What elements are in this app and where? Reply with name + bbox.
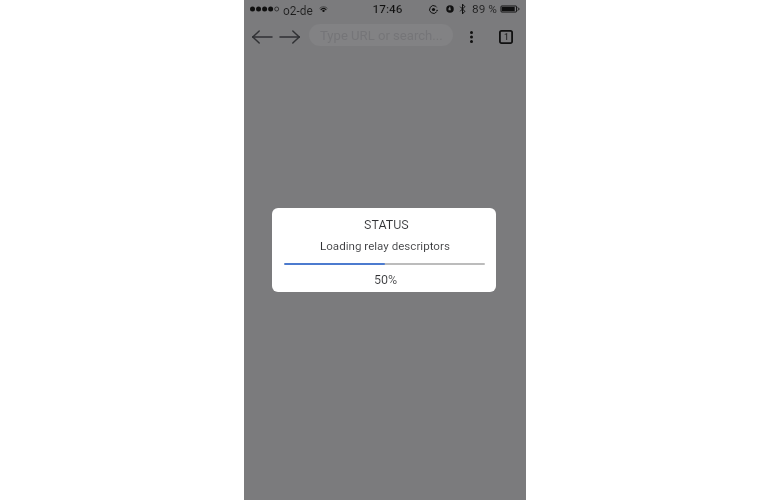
- staticText: 1: [504, 32, 509, 42]
- staticText: 89 %: [472, 2, 497, 16]
- button[interactable]: Back: [249, 24, 275, 49]
- staticText: Loading relay descriptors: [320, 239, 450, 253]
- button[interactable]: Forward: [277, 24, 303, 49]
- staticText: 50%: [374, 272, 398, 287]
- button[interactable]: Type URL or search...: [309, 24, 453, 46]
- staticText: STATUS: [364, 217, 409, 232]
- button[interactable]: More options: [460, 24, 483, 49]
- staticText: o2-de: [283, 4, 313, 18]
- button[interactable]: Tabs: [490, 24, 522, 49]
- staticText: Type URL or search...: [320, 28, 443, 43]
- staticText: 17:46: [372, 2, 403, 16]
